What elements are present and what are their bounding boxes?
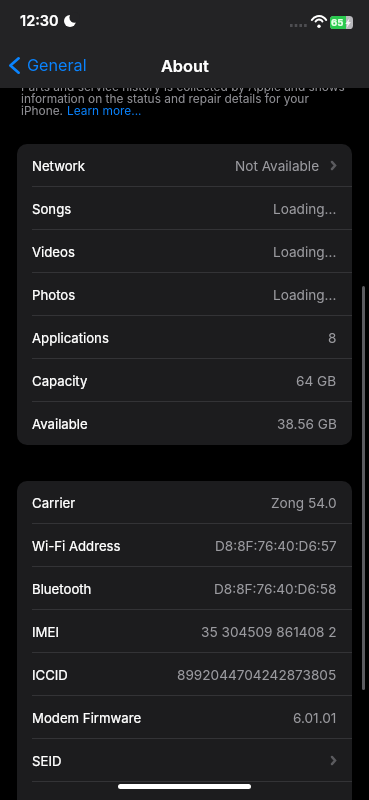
button[interactable]: SEID xyxy=(17,739,352,782)
staticText: 12:30 xyxy=(20,12,59,30)
button[interactable]: Learn more... xyxy=(67,105,142,117)
staticText: 64 GB xyxy=(296,373,337,389)
staticText: information on the status and repair det… xyxy=(21,93,309,105)
button[interactable]: IMEI xyxy=(17,610,352,653)
staticText: Modem Firmware xyxy=(32,710,142,726)
staticText: About xyxy=(161,56,209,76)
staticText: Bluetooth xyxy=(32,581,92,597)
button[interactable] xyxy=(17,782,352,800)
staticText: Loading... xyxy=(273,287,337,303)
button[interactable]: Bluetooth xyxy=(17,567,352,610)
staticText: Not Available xyxy=(235,158,320,174)
staticText: IMEI xyxy=(32,624,59,640)
staticText: 38.56 GB xyxy=(277,416,337,432)
staticText: General xyxy=(27,55,87,75)
button[interactable]: Network xyxy=(17,144,352,187)
button[interactable]: Photos xyxy=(17,273,352,316)
staticText: Parts and service history is collected b… xyxy=(21,81,345,93)
button[interactable]: Modem Firmware xyxy=(17,696,352,739)
staticText: D8:8F:76:40:D6:58 xyxy=(214,581,337,597)
button[interactable]: Carrier xyxy=(17,481,352,524)
staticText: 6.01.01 xyxy=(293,710,337,726)
staticText: Capacity xyxy=(32,373,88,389)
button[interactable]: Capacity xyxy=(17,359,352,402)
staticText: Loading... xyxy=(273,244,337,260)
staticText: 65 xyxy=(331,17,344,29)
staticText: Applications xyxy=(32,330,109,346)
staticText: Photos xyxy=(32,287,76,303)
staticText: Loading... xyxy=(273,201,337,217)
button[interactable]: Wi-Fi Address xyxy=(17,524,352,567)
staticText: 35 304509 861408 2 xyxy=(201,624,337,640)
button[interactable]: Videos xyxy=(17,230,352,273)
button[interactable]: ICCID xyxy=(17,653,352,696)
staticText: Available xyxy=(32,416,88,432)
staticText: Videos xyxy=(32,244,75,260)
staticText: Songs xyxy=(32,201,72,217)
button[interactable]: Songs xyxy=(17,187,352,230)
staticText: 8 xyxy=(328,330,337,346)
staticText: Zong 54.0 xyxy=(271,495,337,511)
button[interactable]: General xyxy=(0,53,95,80)
button[interactable]: Applications xyxy=(17,316,352,359)
staticText: Network xyxy=(32,158,86,174)
staticText: 8992044704242873805 xyxy=(177,667,337,683)
staticText: Carrier xyxy=(32,495,76,511)
staticText: ICCID xyxy=(32,667,68,683)
button[interactable]: Available xyxy=(17,402,352,445)
staticText: SEID xyxy=(32,753,62,769)
staticText: Wi-Fi Address xyxy=(32,538,121,554)
staticText: iPhone. xyxy=(21,105,67,117)
staticText: D8:8F:76:40:D6:57 xyxy=(215,538,337,554)
